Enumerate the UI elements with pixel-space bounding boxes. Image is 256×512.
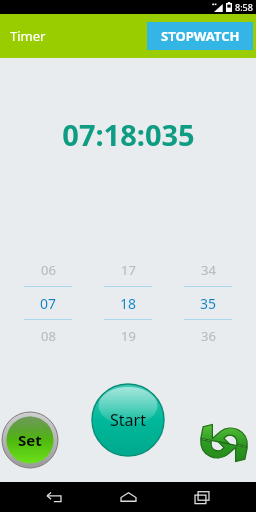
button[interactable]: Back [34,482,74,512]
button[interactable]: Reset [195,414,253,472]
staticText: STOPWATCH [161,27,240,45]
button[interactable]: Recent apps [182,482,222,512]
button[interactable]: 06 [18,261,78,345]
staticText: 06 [41,261,56,279]
staticText: Set [18,430,42,450]
staticText: 8:58 [235,1,253,13]
button[interactable]: 17 [98,261,158,345]
staticText: 07 [40,294,57,313]
staticText: 34 [201,261,216,279]
button[interactable]: Set [2,412,58,468]
staticText: 18 [120,294,137,313]
button[interactable]: STOPWATCH [147,22,253,50]
button[interactable]: Home [108,482,148,512]
button[interactable]: 34 [178,261,238,345]
staticText: 07:18:035 [62,115,195,154]
staticText: Timer [10,27,46,45]
staticText: 19 [121,327,136,345]
button[interactable]: Start [92,384,164,456]
staticText: 17 [121,261,136,279]
staticText: 08 [41,327,56,345]
staticText: Start [110,409,146,431]
staticText: 36 [201,327,216,345]
staticText: 35 [200,294,217,313]
